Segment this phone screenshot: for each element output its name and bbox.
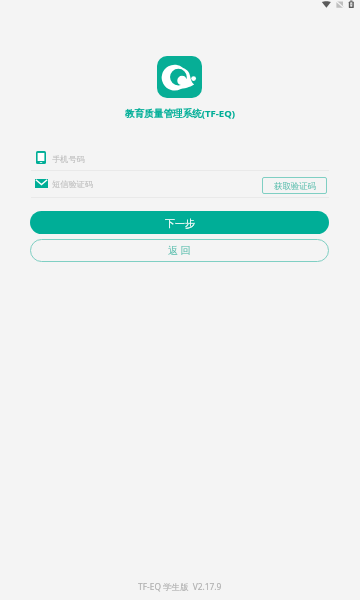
staticText: 教育质量管理系统(TF-EQ) [125,107,236,120]
staticText: 获取验证码 [274,181,316,192]
button[interactable]: 手机号码 [31,146,329,169]
staticText: 下一步 [165,217,195,230]
button[interactable]: 下一步 [30,211,329,234]
staticText: 返 回 [168,243,191,257]
button[interactable]: 返 回 [30,239,329,262]
staticText: 手机号码 [52,154,85,164]
staticText: TF-EQ 学生版 V2.17.9 [138,581,222,592]
staticText: 短信验证码 [52,179,93,189]
button[interactable]: 获取验证码 [262,177,327,194]
